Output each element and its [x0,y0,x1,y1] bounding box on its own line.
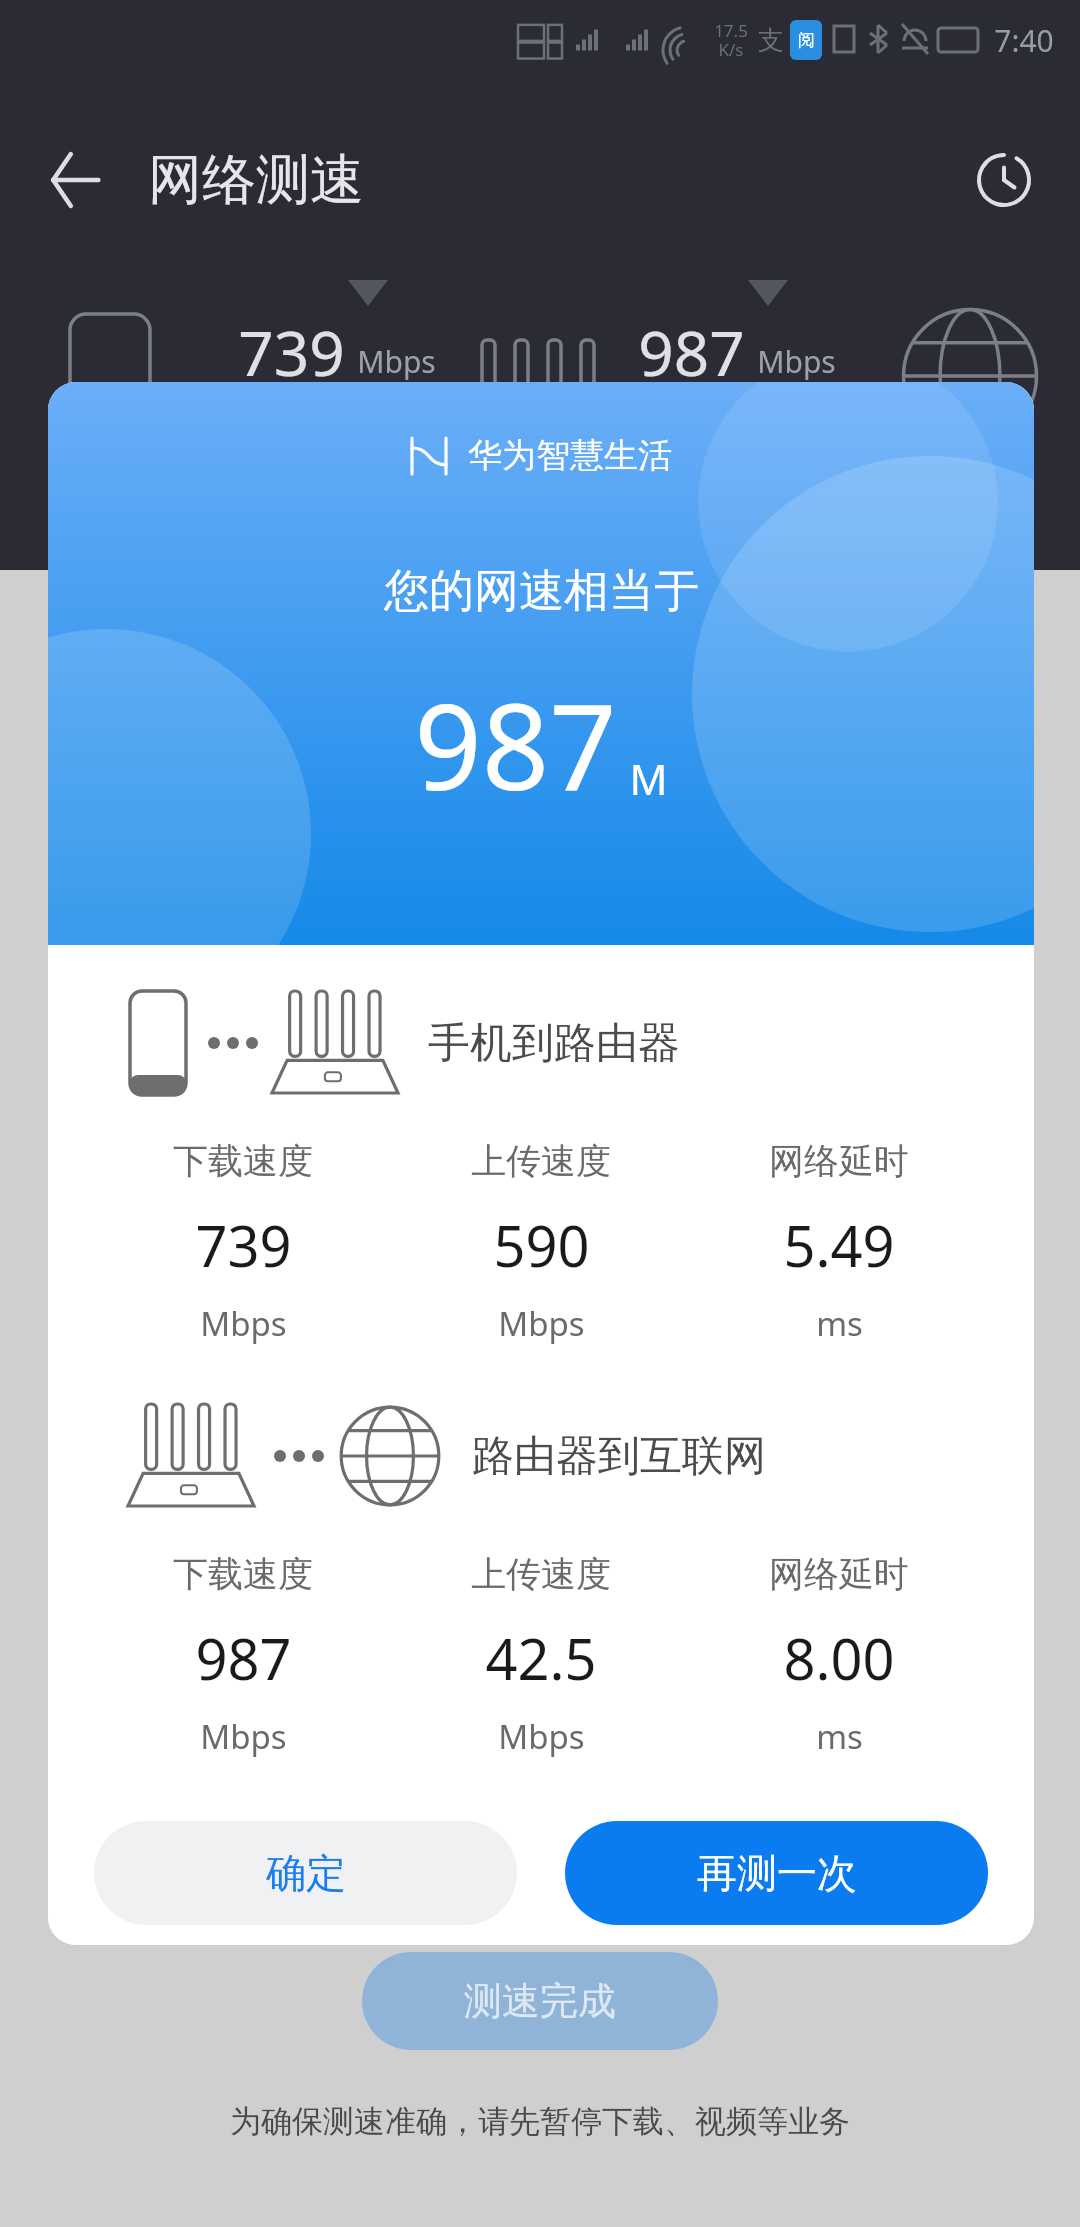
staticText: 8.00 [783,1620,895,1696]
button[interactable]: 再测一次 [565,1821,988,1925]
staticText: 支 [758,24,784,57]
staticText: Mbps [200,1714,287,1759]
staticText: Mbps [498,1714,585,1759]
staticText: 下载速度 [173,1139,313,1183]
staticText: ms [816,1714,863,1759]
staticText: 42.5 [485,1620,597,1696]
staticText: 590 [493,1207,590,1283]
button[interactable]: Back [30,135,120,225]
staticText: 测速完成 [464,1977,616,2025]
staticText: 网络测速 [148,146,364,214]
staticText: 路由器到互联网 [472,1430,766,1483]
staticText: 987 [195,1620,292,1696]
staticText: M [629,750,668,807]
staticText: 17.5 K/s [714,19,748,61]
button[interactable]: 测速完成 [362,1952,718,2050]
button[interactable]: History [956,132,1052,228]
staticText: 987 [638,310,745,394]
staticText: 上传速度 [471,1139,611,1183]
staticText: Mbps [498,1301,585,1346]
staticText: ms [816,1301,863,1346]
staticText: 华为智慧生活 [468,434,672,477]
staticText: 为确保测速准确，请先暂停下载、视频等业务 [230,2102,850,2141]
staticText: 上传速度 [471,1552,611,1596]
staticText: 您的网速相当于 [384,563,699,620]
staticText: 987 [414,664,617,825]
staticText: 手机到路由器 [428,1017,680,1070]
staticText: 确定 [266,1848,346,1898]
staticText: Mbps [757,341,836,382]
staticText: 739 [195,1207,292,1283]
staticText: Mbps [200,1301,287,1346]
staticText: 下载速度 [173,1552,313,1596]
button[interactable]: 确定 [94,1821,517,1925]
staticText: 7:40 [994,20,1054,61]
staticText: 再测一次 [697,1848,857,1898]
staticText: 5.49 [783,1207,895,1283]
staticText: Mbps [357,341,436,382]
staticText: 网络延时 [769,1139,909,1183]
staticText: 阅 [798,30,815,51]
staticText: 网络延时 [769,1552,909,1596]
staticText: 739 [238,310,345,394]
